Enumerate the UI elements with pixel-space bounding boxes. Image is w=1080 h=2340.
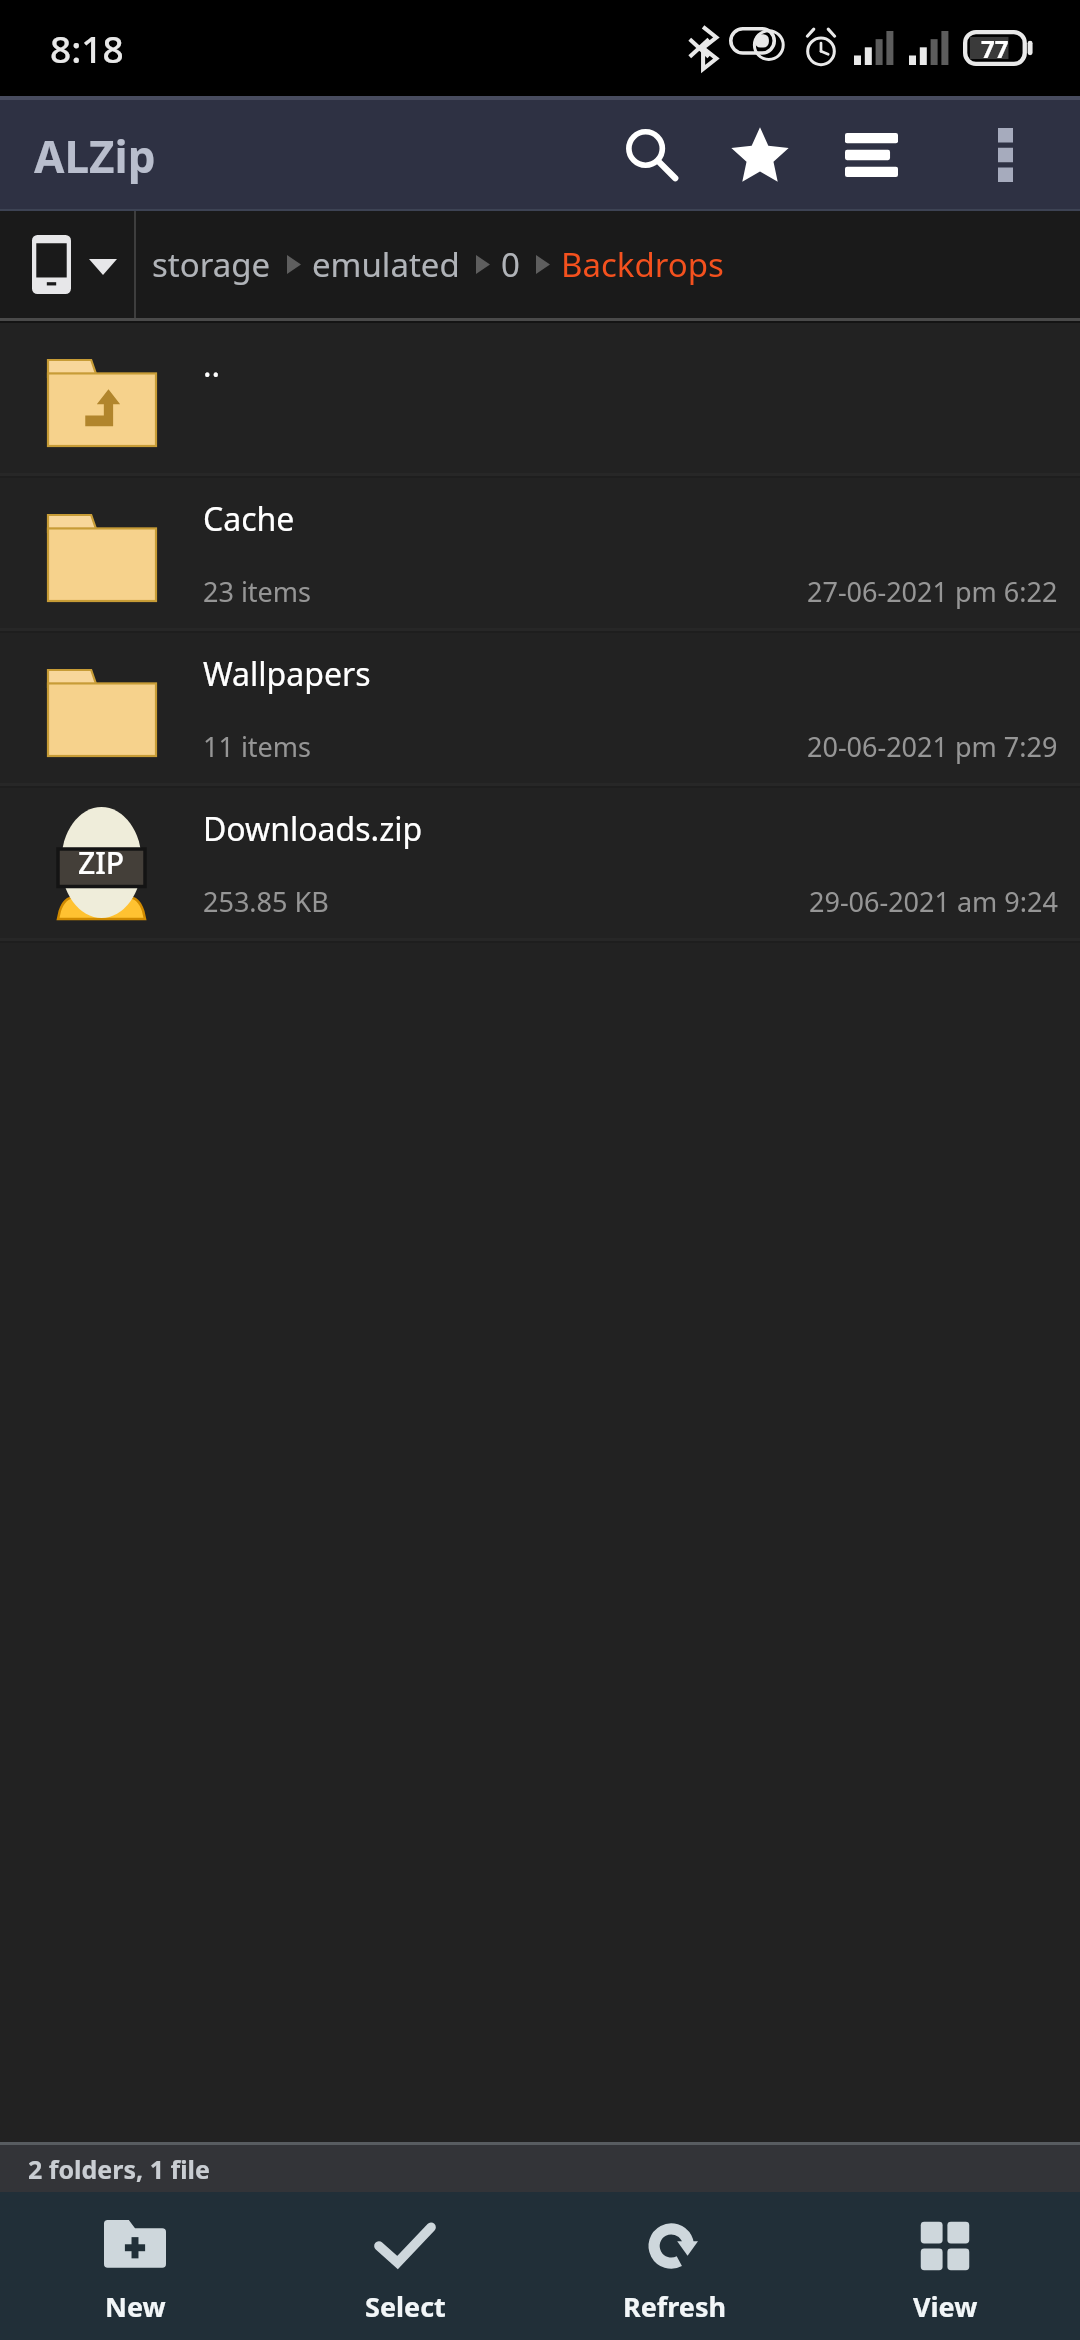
button[interactable]: Select [270,2192,540,2340]
staticText: 0 [501,242,520,287]
button[interactable]: Menu [816,100,926,210]
staticText: 20-06-2021 pm 7:29 [807,728,1058,765]
staticText: New [105,2288,166,2325]
staticText: Downloads.zip [203,807,423,851]
button[interactable]: ZIP [0,788,1080,938]
button[interactable]: View [810,2192,1080,2340]
button[interactable]: Wallpapers [0,633,1080,783]
button[interactable]: New [0,2192,270,2340]
button[interactable]: Refresh [540,2192,810,2340]
staticText: Select [365,2288,446,2325]
button[interactable]: Storage selector [0,211,134,318]
staticText: 8:18 [50,23,124,73]
staticText: 11 items [203,728,312,765]
staticText: emulated [312,242,460,287]
staticText: ZIP [78,842,125,883]
staticText: Wallpapers [203,652,371,696]
button[interactable]: .. [0,323,1080,473]
staticText: ALZip [34,126,156,186]
button[interactable]: Search [596,100,706,210]
staticText: 27-06-2021 pm 6:22 [807,573,1058,610]
staticText: View [913,2288,978,2325]
button[interactable]: Favorites [705,100,815,210]
button[interactable]: More options [950,100,1060,210]
staticText: 2 folders, 1 file [28,2152,210,2186]
staticText: 77 [981,32,1009,65]
staticText: Refresh [623,2288,727,2325]
staticText: Cache [203,497,295,541]
staticText: 253.85 KB [203,883,329,920]
staticText: 29-06-2021 am 9:24 [809,883,1058,920]
staticText: 23 items [203,573,312,610]
staticText: storage [152,242,271,287]
button[interactable]: Cache [0,478,1080,628]
staticText: Backdrops [561,242,724,287]
staticText: .. [203,343,221,387]
